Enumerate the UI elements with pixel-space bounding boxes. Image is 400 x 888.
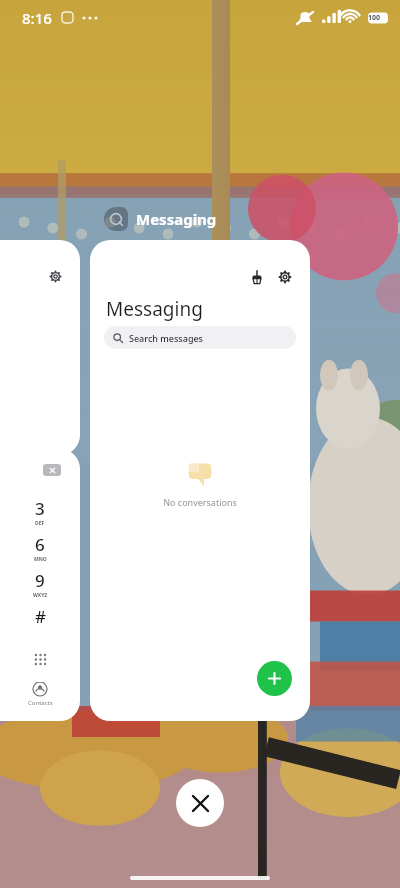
button[interactable]: Contacts: [18, 682, 62, 718]
button[interactable]: Settings: [272, 264, 298, 290]
button[interactable]: Backspace: [43, 464, 61, 476]
button[interactable]: Settings: [44, 265, 66, 287]
button[interactable]: Settings: [0, 240, 80, 455]
button[interactable]: Close all: [176, 779, 224, 827]
button[interactable]: 9: [24, 569, 56, 601]
staticText: 8:16: [22, 8, 52, 28]
button[interactable]: Search messages: [104, 326, 296, 349]
staticText: #: [35, 605, 46, 628]
button[interactable]: Keypad: [26, 645, 54, 673]
staticText: 9: [35, 569, 45, 592]
staticText: WXYZ: [33, 592, 48, 599]
staticText: Contacts: [28, 699, 53, 707]
staticText: Messaging: [106, 296, 203, 322]
staticText: MNO: [34, 556, 47, 563]
staticText: No conversations: [163, 496, 237, 508]
button[interactable]: 3: [24, 497, 56, 529]
button[interactable]: Clean up: [90, 240, 310, 721]
button[interactable]: Backspace: [0, 449, 80, 721]
button[interactable]: New conversation: [257, 661, 292, 696]
staticText: 100: [368, 13, 381, 23]
staticText: Search messages: [129, 332, 203, 344]
button[interactable]: 6: [24, 533, 56, 565]
button[interactable]: Clean up: [244, 264, 270, 290]
staticText: DEF: [35, 520, 45, 527]
button[interactable]: #: [24, 605, 56, 637]
staticText: 6: [35, 533, 45, 556]
staticText: 3: [35, 497, 45, 520]
button[interactable]: Messaging: [104, 207, 217, 231]
staticText: Messaging: [136, 209, 217, 229]
